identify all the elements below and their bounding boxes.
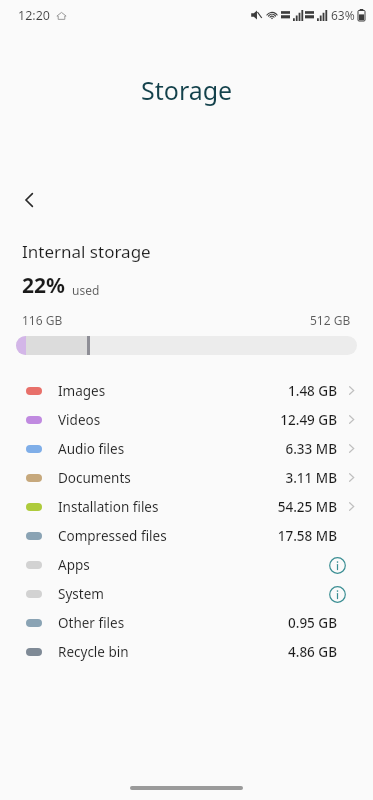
staticText: 17.58 MB [277, 527, 337, 545]
staticText: System [58, 585, 104, 603]
staticText: Recycle bin [58, 643, 129, 661]
staticText: used [72, 282, 100, 298]
staticText: 12:20 [18, 7, 50, 24]
button[interactable]: System [0, 579, 373, 608]
staticText: Documents [58, 469, 131, 487]
button[interactable]: Back [10, 180, 50, 220]
staticText: Other files [58, 614, 125, 632]
staticText: Audio files [58, 440, 125, 458]
staticText: 116 GB [22, 312, 63, 328]
button[interactable]: Info about System [326, 583, 348, 605]
staticText: 6.33 MB [285, 440, 337, 458]
staticText: Videos [58, 411, 101, 429]
staticText: 4.86 GB [288, 643, 337, 661]
button[interactable]: Apps [0, 550, 373, 579]
staticText: Compressed files [58, 527, 167, 545]
staticText: Storage [141, 73, 233, 107]
button[interactable]: Compressed files [0, 521, 373, 550]
button[interactable]: Info about Apps [326, 554, 348, 576]
staticText: Installation files [58, 498, 159, 516]
button[interactable]: Images [0, 376, 373, 405]
staticText: 512 GB [310, 312, 351, 328]
staticText: 22% [22, 271, 65, 300]
button[interactable]: Documents [0, 463, 373, 492]
staticText: 3.11 MB [285, 469, 337, 487]
staticText: Apps [58, 556, 90, 574]
button[interactable]: Installation files [0, 492, 373, 521]
staticText: Images [58, 382, 106, 400]
staticText: 1.48 GB [288, 382, 337, 400]
button[interactable]: Other files [0, 608, 373, 637]
staticText: 0.95 GB [288, 614, 337, 632]
button[interactable]: Recycle bin [0, 637, 373, 666]
staticText: 12.49 GB [280, 411, 337, 429]
button[interactable]: Videos [0, 405, 373, 434]
staticText: Internal storage [22, 240, 151, 263]
staticText: 63% [331, 7, 355, 23]
staticText: 54.25 MB [277, 498, 337, 516]
button[interactable]: Audio files [0, 434, 373, 463]
